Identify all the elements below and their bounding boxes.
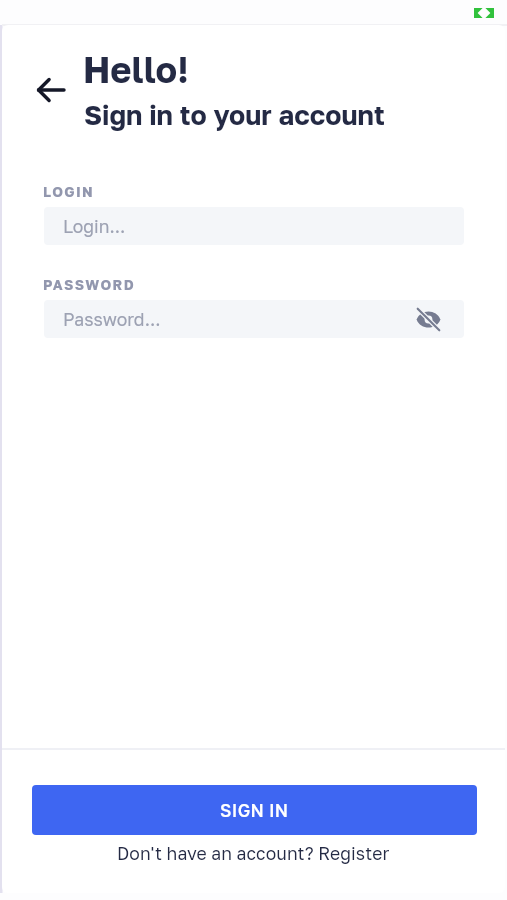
- button[interactable]: Don't have an account? Register: [2, 837, 505, 869]
- staticText: Login...: [63, 216, 126, 237]
- staticText: PASSWORD: [43, 276, 136, 293]
- staticText: Hello!: [83, 48, 189, 91]
- button[interactable]: Back: [33, 72, 69, 108]
- button[interactable]: Login...: [44, 207, 464, 245]
- staticText: Don't have an account? Register: [117, 843, 390, 864]
- button[interactable]: Password...: [44, 300, 464, 338]
- staticText: Password...: [63, 309, 161, 330]
- staticText: SIGN IN: [220, 800, 289, 821]
- button[interactable]: Show password: [414, 305, 442, 333]
- button[interactable]: SIGN IN: [32, 785, 477, 835]
- staticText: Sign in to your account: [84, 99, 385, 131]
- button[interactable]: Fullscreen: [466, 0, 499, 26]
- staticText: LOGIN: [43, 183, 95, 200]
